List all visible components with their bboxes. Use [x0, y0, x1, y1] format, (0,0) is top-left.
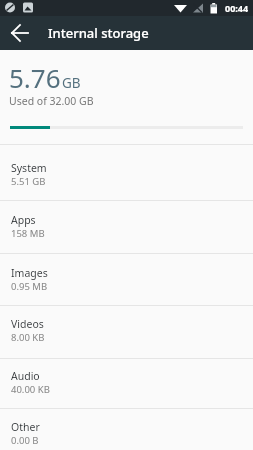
staticText: GB [62, 74, 81, 92]
button[interactable] [8, 21, 32, 45]
staticText: 8.00 KB [11, 331, 45, 344]
staticText: Images [11, 266, 48, 280]
staticText: Audio [11, 369, 40, 383]
staticText: Videos [11, 317, 44, 331]
button[interactable]: Videos [0, 306, 253, 355]
staticText: 00:44 [225, 2, 249, 14]
staticText: Internal storage [48, 24, 149, 42]
staticText: 5.51 GB [11, 175, 46, 188]
button[interactable]: Images [0, 255, 253, 304]
staticText: Used of 32.00 GB [9, 94, 94, 108]
staticText: Apps [11, 213, 36, 227]
staticText: 158 MB [11, 227, 45, 240]
staticText: System [11, 161, 47, 175]
button[interactable]: Audio [0, 358, 253, 407]
staticText: 5.76 [9, 60, 61, 95]
staticText: 0.95 MB [11, 280, 48, 293]
button[interactable]: System [0, 150, 253, 199]
staticText: 40.00 KB [11, 383, 50, 396]
staticText: 0.00 B [11, 434, 39, 447]
button[interactable]: Apps [0, 202, 253, 251]
staticText: Other [11, 420, 40, 434]
button[interactable]: Other [0, 409, 253, 450]
